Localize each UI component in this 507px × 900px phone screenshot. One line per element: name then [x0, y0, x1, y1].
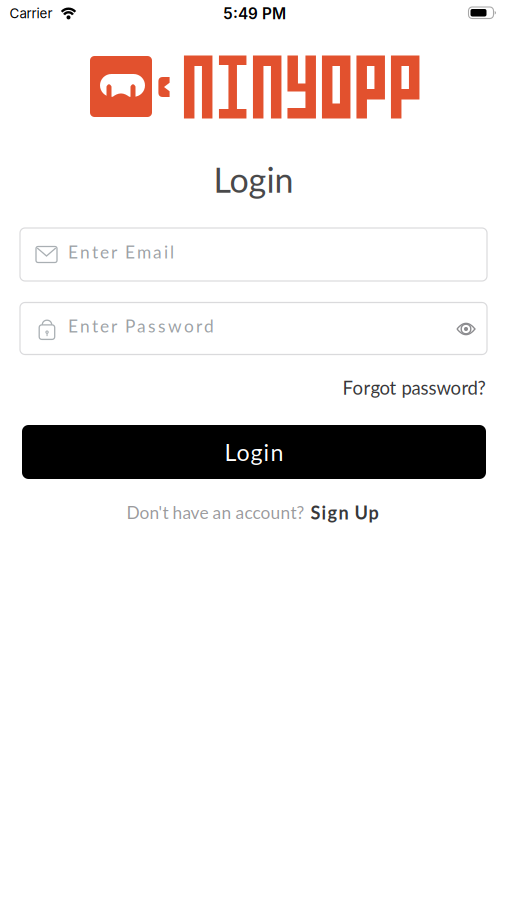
button[interactable]: S i g n U p: [310, 501, 378, 523]
staticText: 5:49 PM: [223, 4, 286, 23]
button[interactable]: Forgot password?: [342, 376, 485, 399]
button[interactable]: Show password: [449, 314, 483, 344]
staticText: Forgot password?: [342, 376, 485, 399]
staticText: Don't have an account?: [126, 502, 304, 523]
staticText: Login: [224, 438, 284, 466]
staticText: E n t e r E m a i l: [68, 241, 174, 262]
staticText: Login: [213, 159, 293, 200]
button[interactable]: Enter Password: [20, 302, 487, 354]
staticText: Carrier: [9, 5, 52, 21]
staticText: S i g n U p: [310, 501, 378, 523]
staticText: E n t e r P a s s w o r d: [68, 315, 214, 336]
button[interactable]: Enter Email: [20, 228, 487, 281]
button[interactable]: Login: [22, 425, 486, 479]
